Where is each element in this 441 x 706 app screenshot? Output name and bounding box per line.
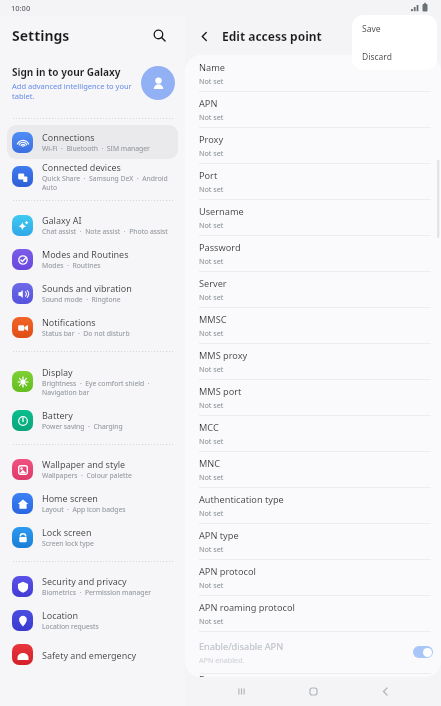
staticText: Location [42, 609, 79, 621]
staticText: Display [42, 366, 73, 378]
staticText: 10:00 [11, 3, 31, 13]
button[interactable]: Wallpaper and style [7, 452, 178, 486]
staticText: MMSC [199, 313, 227, 326]
staticText: APN enabled. [199, 655, 245, 665]
staticText: Server [199, 277, 227, 290]
staticText: Not set [199, 256, 224, 266]
staticText: Username [199, 205, 244, 218]
staticText: Save [362, 23, 381, 35]
button[interactable]: Password [185, 235, 441, 271]
staticText: Wallpapers · Colour palette [42, 471, 132, 480]
staticText: Not set [199, 292, 224, 302]
staticText: Battery [42, 409, 73, 421]
button[interactable]: Save [352, 15, 437, 43]
staticText: Bearer [199, 673, 228, 677]
staticText: Location requests [42, 622, 99, 631]
staticText: Lock screen [42, 526, 92, 538]
staticText: Not set [199, 472, 224, 482]
staticText: Quick Share · Samsung DeX · Android Auto [42, 174, 172, 192]
button[interactable]: MNC [185, 451, 441, 487]
staticText: Not set [199, 328, 224, 338]
button[interactable]: Enable/disable APN [185, 631, 441, 673]
button[interactable]: Server [185, 271, 441, 307]
staticText: Not set [199, 436, 224, 446]
button[interactable]: Safety and emergency [7, 637, 178, 671]
staticText: Brightness · Eye comfort shield · Naviga… [42, 379, 172, 397]
staticText: MCC [199, 421, 219, 434]
button[interactable]: Discard [352, 43, 437, 70]
button[interactable]: Location [7, 603, 178, 637]
button[interactable]: Connections [7, 125, 178, 159]
staticText: Name [199, 61, 225, 74]
staticText: APN type [199, 529, 239, 542]
staticText: Sign in to your Galaxy [12, 65, 121, 79]
staticText: Enable/disable APN [199, 640, 284, 653]
staticText: Status bar · Do not disturb [42, 329, 130, 338]
staticText: MMS proxy [199, 349, 248, 362]
staticText: Not set [199, 364, 224, 374]
staticText: Galaxy AI [42, 214, 82, 226]
button[interactable]: MMS port [185, 379, 441, 415]
button[interactable]: Username [185, 199, 441, 235]
staticText: Not set [199, 184, 224, 194]
staticText: Power saving · Charging [42, 422, 123, 431]
staticText: Not set [199, 544, 224, 554]
button[interactable]: Connected devices [7, 159, 178, 193]
staticText: APN roaming protocol [199, 601, 295, 614]
staticText: Modes · Routines [42, 261, 101, 270]
button[interactable]: Sign in to your Galaxy [0, 54, 185, 112]
staticText: Settings [12, 26, 70, 45]
button[interactable]: MMSC [185, 307, 441, 343]
button[interactable]: Notifications [7, 310, 178, 344]
staticText: Not set [199, 76, 224, 86]
staticText: Layout · App icon badges [42, 505, 126, 514]
staticText: MNC [199, 457, 221, 470]
staticText: Notifications [42, 316, 96, 328]
staticText: Home screen [42, 492, 98, 504]
button[interactable]: Display [7, 359, 178, 403]
button[interactable]: MMS proxy [185, 343, 441, 379]
staticText: Not set [199, 508, 224, 518]
button[interactable]: Galaxy AI [7, 208, 178, 242]
staticText: Chat assist · Note assist · Photo assist [42, 227, 168, 236]
staticText: Not set [199, 400, 224, 410]
button[interactable]: Enable or disable APN [413, 646, 433, 658]
staticText: Discard [362, 51, 392, 63]
staticText: Edit access point [222, 28, 322, 44]
staticText: Screen lock type [42, 539, 94, 548]
button[interactable]: Home [297, 677, 329, 706]
button[interactable]: Battery [7, 403, 178, 437]
staticText: Port [199, 169, 218, 182]
staticText: Sounds and vibration [42, 282, 132, 294]
button[interactable]: Modes and Routines [7, 242, 178, 276]
button[interactable]: Security and privacy [7, 569, 178, 603]
button[interactable]: Home screen [7, 486, 178, 520]
button[interactable]: Name [185, 55, 441, 91]
button[interactable]: Search [146, 22, 172, 48]
staticText: Not set [199, 580, 224, 590]
button[interactable]: Sounds and vibration [7, 276, 178, 310]
staticText: Safety and emergency [42, 649, 137, 661]
staticText: Password [199, 241, 241, 254]
button[interactable]: APN type [185, 523, 441, 559]
button[interactable]: APN roaming protocol [185, 595, 441, 631]
button[interactable]: Back [191, 23, 217, 49]
staticText: Wi-Fi · Bluetooth · SIM manager [42, 144, 150, 153]
button[interactable]: Back [369, 677, 401, 706]
button[interactable]: Recents [225, 677, 257, 706]
staticText: Not set [199, 220, 224, 230]
staticText: Connections [42, 131, 95, 143]
button[interactable]: Proxy [185, 127, 441, 163]
button[interactable]: APN protocol [185, 559, 441, 595]
staticText: APN [199, 97, 218, 110]
staticText: Not set [199, 616, 224, 626]
button[interactable]: Bearer [185, 673, 441, 677]
button[interactable]: Authentication type [185, 487, 441, 523]
staticText: Not set [199, 148, 224, 158]
button[interactable]: Lock screen [7, 520, 178, 554]
button[interactable]: MCC [185, 415, 441, 451]
button[interactable]: Port [185, 163, 441, 199]
button[interactable]: APN [185, 91, 441, 127]
staticText: Modes and Routines [42, 248, 129, 260]
staticText: Authentication type [199, 493, 284, 506]
